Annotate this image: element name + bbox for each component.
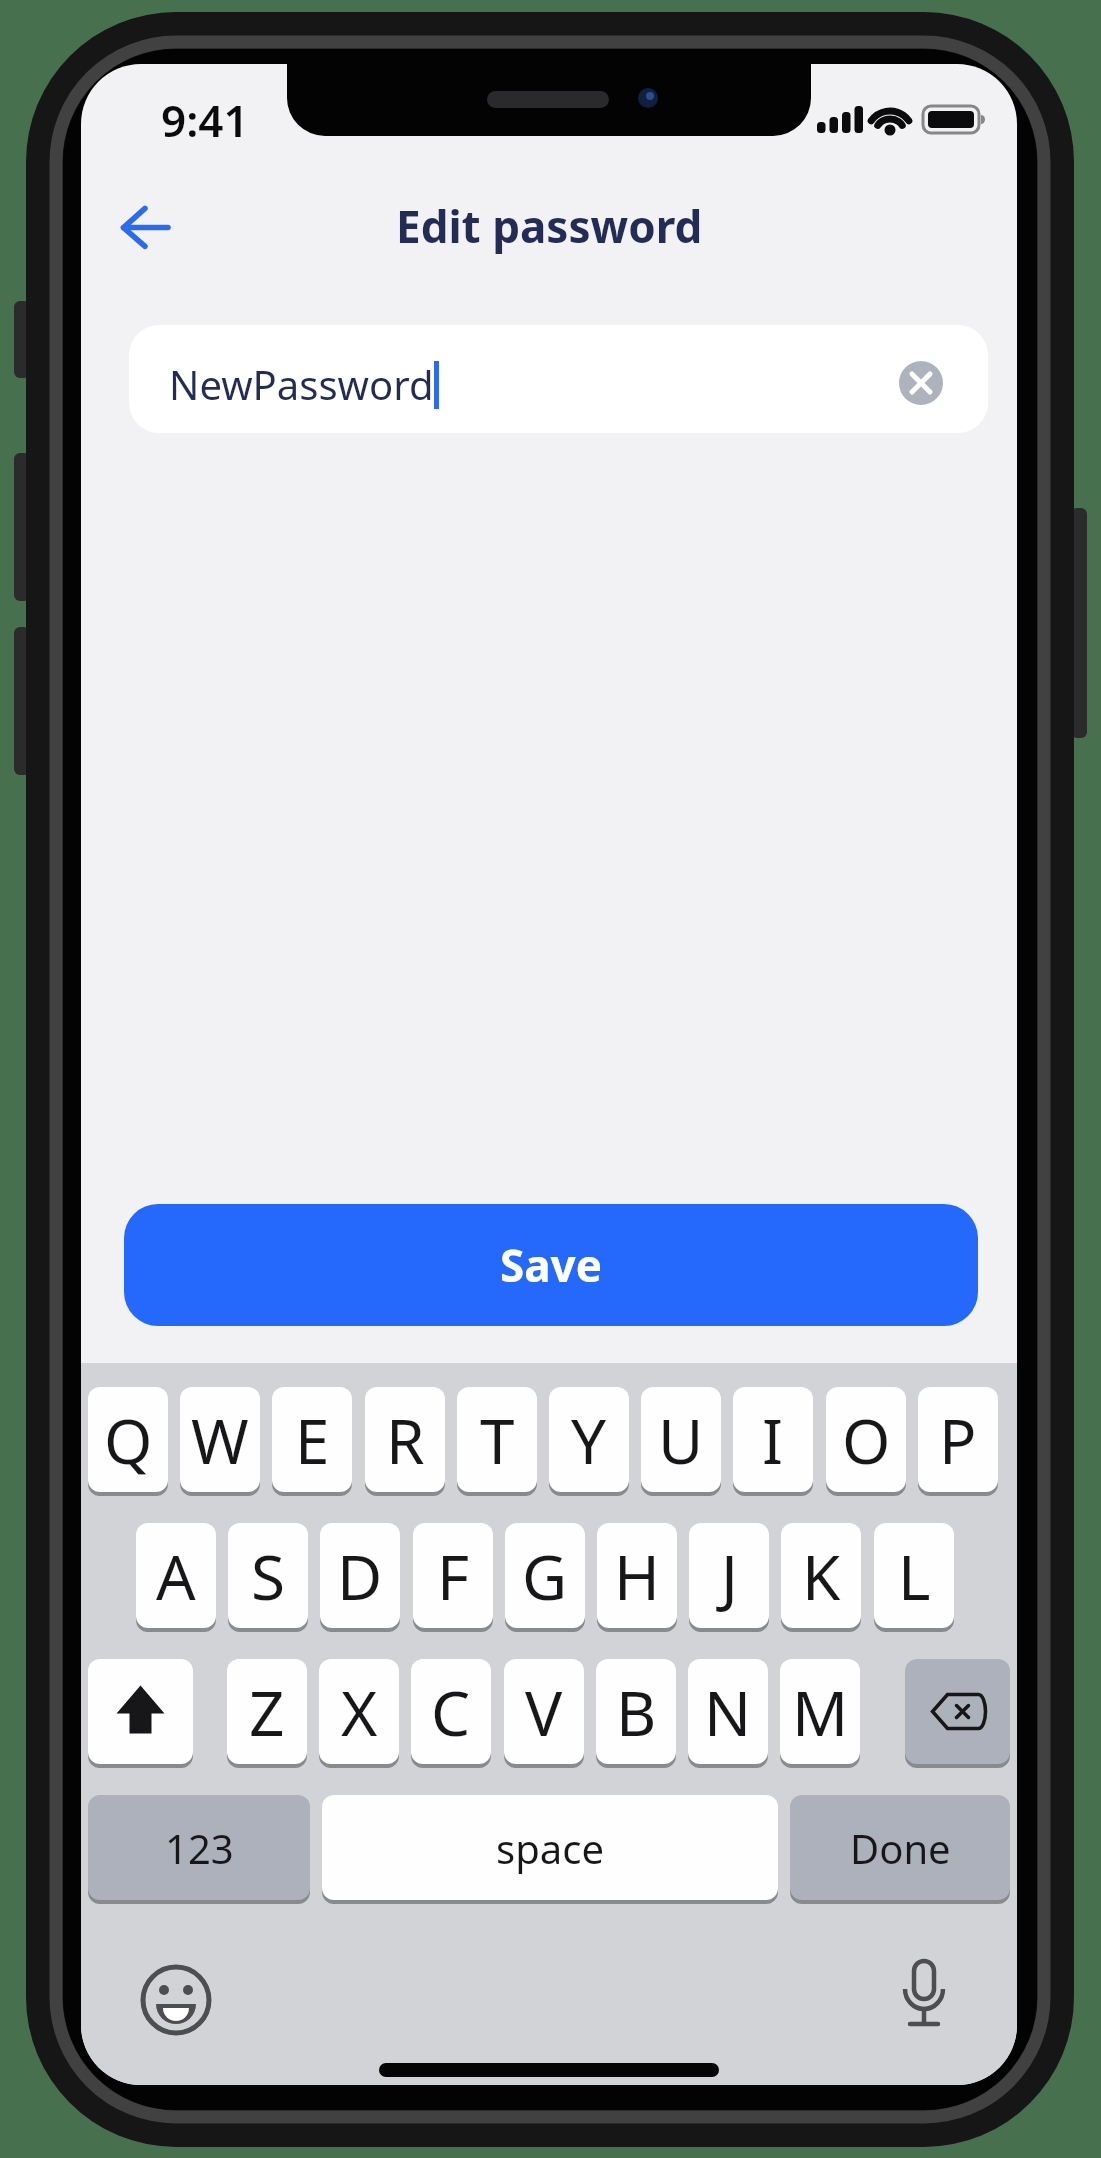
button[interactable]: H <box>597 1523 677 1632</box>
staticText: O <box>842 1398 891 1482</box>
button[interactable]: P <box>918 1387 998 1496</box>
button[interactable]: E <box>272 1387 352 1496</box>
staticText: A <box>156 1534 196 1618</box>
staticText: N <box>704 1670 752 1754</box>
button[interactable] <box>905 1659 1010 1768</box>
staticText: Done <box>850 1821 951 1875</box>
button[interactable]: C <box>411 1659 491 1768</box>
staticText: E <box>295 1398 330 1482</box>
button[interactable] <box>103 198 189 262</box>
staticText: space <box>496 1821 604 1875</box>
staticText: C <box>431 1670 471 1754</box>
staticText: G <box>522 1534 568 1618</box>
button[interactable]: U <box>641 1387 721 1496</box>
staticText: J <box>721 1534 738 1618</box>
button[interactable]: Save <box>124 1204 978 1326</box>
staticText: M <box>792 1670 849 1754</box>
button[interactable]: S <box>228 1523 308 1632</box>
button[interactable]: B <box>596 1659 676 1768</box>
button[interactable]: M <box>780 1659 860 1768</box>
button[interactable]: Q <box>88 1387 168 1496</box>
staticText: D <box>337 1534 383 1618</box>
button[interactable]: 123 <box>88 1795 310 1904</box>
button[interactable]: R <box>365 1387 445 1496</box>
button[interactable]: Done <box>790 1795 1010 1904</box>
staticText: L <box>898 1534 931 1618</box>
button[interactable]: G <box>505 1523 585 1632</box>
button[interactable]: Z <box>227 1659 307 1768</box>
button[interactable]: Y <box>549 1387 629 1496</box>
staticText: F <box>437 1534 470 1618</box>
button[interactable]: A <box>136 1523 216 1632</box>
staticText: 123 <box>165 1821 234 1875</box>
staticText: W <box>191 1398 249 1482</box>
button[interactable]: T <box>457 1387 537 1496</box>
staticText: Save <box>500 1235 602 1295</box>
staticText: Z <box>249 1670 285 1754</box>
staticText: Y <box>571 1398 607 1482</box>
staticText: 9:41 <box>161 90 249 150</box>
staticText: I <box>762 1398 784 1482</box>
button[interactable]: NewPassword <box>129 325 988 433</box>
button[interactable]: space <box>322 1795 778 1904</box>
button[interactable] <box>88 1659 193 1768</box>
button[interactable]: K <box>781 1523 861 1632</box>
button[interactable]: D <box>320 1523 400 1632</box>
button[interactable]: O <box>826 1387 906 1496</box>
button[interactable]: L <box>874 1523 954 1632</box>
staticText: K <box>802 1534 841 1618</box>
staticText: R <box>386 1398 425 1482</box>
button[interactable] <box>899 361 943 405</box>
staticText: P <box>939 1398 977 1482</box>
button[interactable]: F <box>413 1523 493 1632</box>
staticText: NewPassword <box>169 357 434 411</box>
staticText: B <box>616 1670 657 1754</box>
staticText: Q <box>104 1398 153 1482</box>
button[interactable]: V <box>504 1659 584 1768</box>
button[interactable]: X <box>319 1659 399 1768</box>
staticText: X <box>341 1670 378 1754</box>
staticText: S <box>251 1534 286 1618</box>
staticText: U <box>658 1398 704 1482</box>
button[interactable]: I <box>733 1387 813 1496</box>
button[interactable] <box>140 1964 212 2036</box>
button[interactable]: W <box>180 1387 260 1496</box>
button[interactable]: N <box>688 1659 768 1768</box>
staticText: T <box>480 1398 515 1482</box>
button[interactable] <box>886 1955 962 2039</box>
staticText: V <box>525 1670 563 1754</box>
staticText: H <box>614 1534 660 1618</box>
staticText: Edit password <box>396 196 703 256</box>
button[interactable]: J <box>689 1523 769 1632</box>
